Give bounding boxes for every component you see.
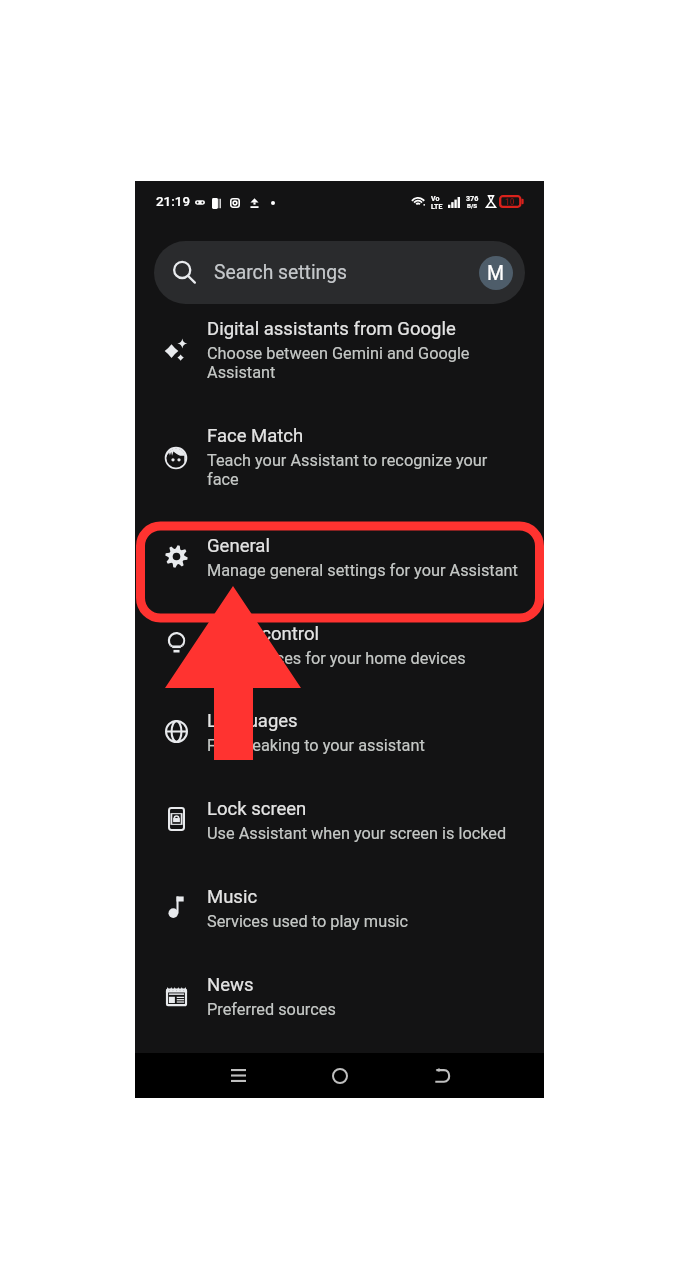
staticText: Search settings: [214, 261, 348, 284]
staticText: LTE: [431, 203, 443, 211]
staticText: Choose between Gemini and Google Assista…: [207, 344, 470, 382]
button[interactable]: Lock screen: [135, 784, 544, 856]
staticText: News: [207, 974, 254, 996]
staticText: Home control: [207, 623, 320, 645]
button[interactable]: Digital assistants from Google: [135, 304, 544, 395]
staticText: Music: [207, 886, 258, 908]
button[interactable]: Search settings: [154, 241, 525, 304]
button[interactable]: General: [135, 521, 544, 593]
staticText: M: [487, 262, 505, 285]
staticText: Vo: [431, 195, 440, 203]
staticText: Lock screen: [207, 798, 307, 820]
staticText: 10: [505, 197, 515, 207]
button[interactable]: Back: [418, 1053, 466, 1098]
button[interactable]: News: [135, 960, 544, 1032]
button[interactable]: Home control: [135, 609, 544, 681]
staticText: 376: [466, 194, 479, 202]
button[interactable]: Recents: [214, 1053, 262, 1098]
staticText: Digital assistants from Google: [207, 318, 456, 340]
staticText: Use Assistant when your screen is locked: [207, 824, 507, 843]
staticText: Manage general settings for your Assista…: [207, 561, 518, 580]
button[interactable]: Account: [479, 256, 513, 290]
staticText: Face Match: [207, 425, 304, 447]
staticText: General: [207, 535, 270, 557]
button[interactable]: Languages: [135, 696, 544, 768]
button[interactable]: Home: [316, 1053, 364, 1098]
button[interactable]: Music: [135, 872, 544, 944]
staticText: Link services for your home devices: [207, 649, 466, 668]
staticText: For speaking to your assistant: [207, 736, 425, 755]
button[interactable]: Face Match: [135, 411, 544, 502]
staticText: 21:19: [156, 194, 190, 210]
staticText: Teach your Assistant to recognize your f…: [207, 451, 488, 489]
staticText: B/S: [467, 202, 478, 209]
staticText: Services used to play music: [207, 912, 409, 931]
staticText: Languages: [207, 710, 298, 732]
staticText: Preferred sources: [207, 1000, 336, 1019]
